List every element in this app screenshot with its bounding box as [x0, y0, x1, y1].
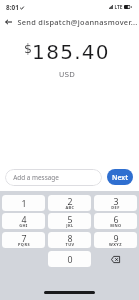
staticText: 185.40 [32, 40, 110, 63]
staticText: 7 [21, 233, 27, 245]
staticText: 0 [67, 254, 73, 266]
button[interactable]: 0 [48, 251, 91, 267]
button[interactable]: 1 [2, 195, 45, 211]
staticText: 9 [113, 233, 119, 245]
staticText: USD [59, 70, 75, 78]
button[interactable]: 2 [48, 195, 91, 211]
staticText: 3 [113, 196, 119, 208]
staticText: ABC [65, 205, 75, 210]
staticText: PQRS [18, 242, 30, 247]
staticText: 8 [67, 233, 73, 245]
button[interactable]: Add a message [5, 169, 102, 186]
staticText: 4 [21, 214, 27, 226]
staticText: TUV [65, 242, 75, 247]
button[interactable]: 6 [94, 213, 137, 229]
staticText: 1 [21, 198, 27, 210]
staticText: MNO [110, 223, 122, 228]
staticText: DEF [111, 205, 120, 210]
staticText: Add a message [13, 173, 59, 182]
button[interactable]: 4 [2, 213, 45, 229]
staticText: LTE [114, 4, 123, 11]
button[interactable]: 5 [48, 213, 91, 229]
button[interactable]: 8 [48, 232, 91, 248]
button[interactable]: Backspace [94, 251, 137, 267]
staticText: Send dispatch@joannasmover... [17, 17, 138, 27]
button[interactable]: 9 [94, 232, 137, 248]
staticText: 2 [67, 196, 73, 208]
button[interactable]: Back [0, 13, 17, 30]
button[interactable]: 3 [94, 195, 137, 211]
staticText: 8:01 [6, 3, 19, 12]
staticText: 6 [113, 214, 119, 226]
staticText: $ [24, 41, 32, 56]
staticText: WXYZ [109, 242, 122, 247]
button[interactable]: Next [107, 169, 133, 185]
staticText: JKL [66, 223, 74, 228]
staticText: Next [112, 173, 128, 182]
staticText: 5 [67, 214, 73, 226]
staticText: GHI [19, 223, 28, 228]
button[interactable]: 7 [2, 232, 45, 248]
